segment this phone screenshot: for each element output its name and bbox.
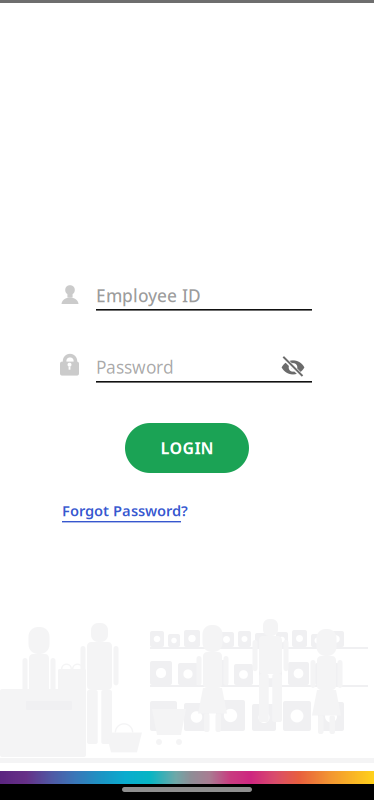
button[interactable]: LOGIN: [125, 423, 249, 473]
staticText: Password: [96, 355, 174, 378]
staticText: LOGIN: [160, 437, 213, 459]
staticText: Forgot Password?: [62, 501, 188, 520]
button[interactable]: Forgot Password?: [62, 501, 188, 522]
button[interactable]: Show password: [281, 355, 305, 379]
staticText: Employee ID: [96, 284, 201, 307]
